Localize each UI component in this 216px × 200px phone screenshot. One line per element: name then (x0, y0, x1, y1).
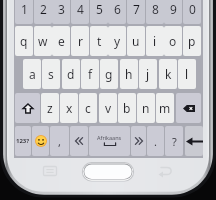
staticText: . (154, 134, 157, 149)
staticText: 4 (77, 1, 84, 17)
staticText: 9 (170, 1, 177, 17)
staticText: 8 (152, 1, 159, 17)
staticText: o (169, 33, 177, 49)
button[interactable]: i (146, 26, 164, 56)
staticText: j (146, 66, 150, 82)
button[interactable]: b (118, 93, 136, 123)
staticText: 123? (16, 137, 30, 145)
button[interactable]: ? (165, 126, 183, 156)
button[interactable]: m (156, 93, 174, 123)
staticText: m (159, 100, 171, 116)
button[interactable]: t (90, 26, 108, 56)
staticText: r (78, 33, 83, 49)
button[interactable]: . (147, 126, 164, 156)
staticText: q (20, 33, 28, 49)
staticText: z (47, 100, 53, 116)
button[interactable]: 6 (108, 0, 126, 24)
staticText: 7 (133, 1, 140, 17)
button[interactable]: 4 (71, 0, 89, 24)
staticText: Afrikaans (97, 134, 122, 141)
staticText: l (185, 66, 189, 82)
button[interactable]: 9 (164, 0, 182, 24)
button[interactable]: h (120, 59, 138, 89)
button[interactable]: 8 (146, 0, 164, 24)
button[interactable]: e (52, 26, 70, 56)
staticText: n (142, 100, 150, 116)
staticText: b (123, 100, 131, 116)
button[interactable]: 3 (52, 0, 70, 24)
button[interactable]: Space (89, 126, 130, 156)
staticText: 2 (40, 1, 47, 17)
button[interactable]: Next language (131, 126, 146, 156)
button[interactable]: w (34, 26, 52, 56)
staticText: 0 (189, 1, 196, 17)
button[interactable]: Backspace (176, 93, 201, 123)
staticText: f (88, 66, 93, 82)
staticText: p (188, 33, 196, 49)
button[interactable]: z (41, 93, 59, 123)
staticText: 3 (58, 1, 65, 17)
button[interactable]: k (159, 59, 177, 89)
button[interactable]: q (15, 26, 33, 56)
staticText: u (132, 33, 140, 49)
button[interactable]: 123? (15, 126, 31, 156)
staticText: v (105, 100, 112, 116)
button[interactable]: 5 (90, 0, 108, 24)
staticText: g (105, 66, 113, 82)
button[interactable]: 2 (34, 0, 52, 24)
staticText: c (85, 100, 91, 116)
staticText: h (125, 66, 133, 82)
staticText: 5 (96, 1, 103, 17)
staticText: t (97, 33, 102, 49)
staticText: a (29, 66, 36, 82)
staticText: d (67, 66, 75, 82)
button[interactable]: x (60, 93, 78, 123)
button[interactable]: l (178, 59, 196, 89)
button[interactable]: r (71, 26, 89, 56)
button[interactable]: c (79, 93, 97, 123)
staticText: x (66, 100, 73, 116)
button[interactable]: n (137, 93, 155, 123)
button[interactable]: Previous language (70, 126, 88, 156)
button[interactable]: Shift (15, 93, 40, 123)
button[interactable]: s (42, 59, 60, 89)
button[interactable]: , (50, 126, 69, 156)
staticText: i (153, 33, 157, 49)
button[interactable]: a (23, 59, 41, 89)
staticText: e (58, 33, 65, 49)
staticText: k (165, 66, 172, 82)
button[interactable]: u (127, 26, 145, 56)
button[interactable]: j (139, 59, 157, 89)
button[interactable]: Enter (185, 126, 203, 156)
staticText: 1 (21, 1, 28, 17)
staticText: , (58, 134, 61, 149)
staticText: s (48, 66, 54, 82)
button[interactable]: f (81, 59, 99, 89)
button[interactable]: p (183, 26, 201, 56)
button[interactable]: g (100, 59, 118, 89)
button[interactable]: y (108, 26, 126, 56)
staticText: ? (172, 134, 177, 149)
staticText: w (38, 33, 48, 49)
button[interactable]: 0 (183, 0, 201, 24)
button[interactable]: 7 (127, 0, 145, 24)
staticText: 6 (114, 1, 121, 17)
staticText: y (114, 33, 121, 49)
button[interactable]: d (62, 59, 80, 89)
button[interactable]: o (164, 26, 182, 56)
button[interactable]: v (99, 93, 117, 123)
button[interactable]: Emoji (32, 126, 49, 156)
button[interactable]: 1 (15, 0, 33, 24)
